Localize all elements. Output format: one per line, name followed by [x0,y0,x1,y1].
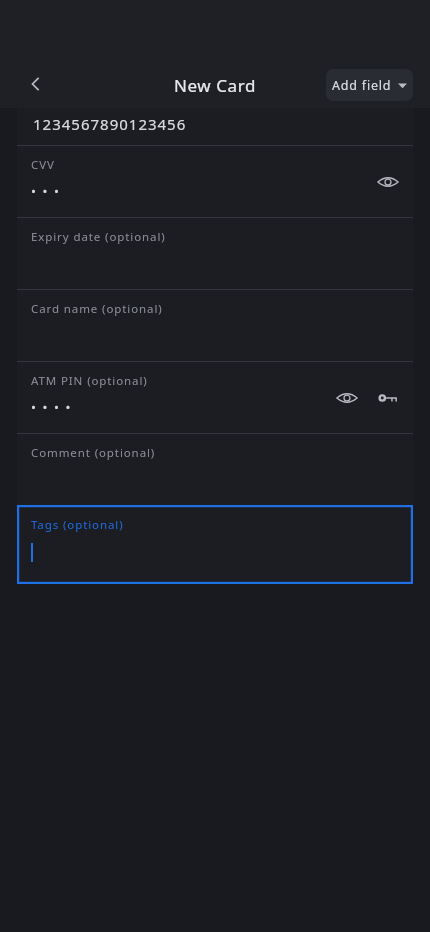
button[interactable]: Comment (optional) [17,434,413,505]
button[interactable]: Expiry date (optional) [17,218,413,289]
staticText: Card name (optional) [31,301,163,317]
staticText: Tags (optional) [31,517,124,533]
button[interactable]: Show value [325,376,369,420]
staticText: New Card [0,74,430,97]
staticText: Comment (optional) [31,445,156,461]
button[interactable]: ATM PIN (optional) [17,362,413,433]
staticText: Add field [332,77,392,94]
button[interactable]: Back [14,62,58,106]
staticText: Expiry date (optional) [31,229,166,245]
button[interactable]: Add field [326,69,413,101]
staticText: • • • • [31,398,72,416]
button[interactable]: CVV [17,146,413,217]
staticText: ATM PIN (optional) [31,373,148,389]
staticText: 1234567890123456 [33,114,187,134]
button[interactable]: Show value [366,160,410,204]
button[interactable]: Card name (optional) [17,290,413,361]
button[interactable]: 1234567890123456 [17,108,413,145]
staticText: CVV [31,157,55,173]
staticText: • • • [31,182,61,200]
button[interactable]: Tags (optional) [17,505,413,584]
button[interactable]: Generate PIN [366,376,410,420]
